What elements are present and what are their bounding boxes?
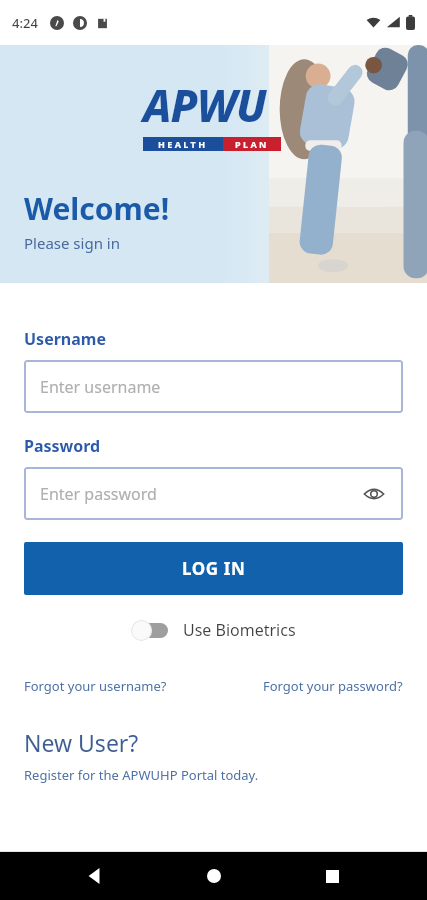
staticText: Password [24, 435, 101, 457]
button[interactable]: Forgot your password? [263, 677, 403, 695]
staticText: Use Biometrics [183, 619, 296, 641]
staticText: Welcome! [24, 188, 170, 229]
staticText: HEALTH [158, 138, 208, 150]
button[interactable]: Back [71, 852, 119, 900]
staticText: Enter username [40, 376, 161, 398]
staticText: Enter password [40, 483, 157, 505]
staticText: LOG IN [182, 557, 246, 580]
staticText: PLAN [235, 138, 269, 150]
button[interactable]: Enter password [24, 467, 403, 520]
staticText: 4:24 [12, 14, 38, 32]
button[interactable]: Enter username [24, 360, 403, 413]
button[interactable]: Forgot your username? [24, 677, 167, 695]
button[interactable]: Show password [359, 479, 389, 509]
staticText: Forgot your username? [24, 677, 167, 695]
staticText: Forgot your password? [263, 677, 403, 695]
staticText: Please sign in [24, 233, 120, 253]
staticText: New User? [24, 727, 139, 758]
button[interactable]: Use Biometrics [24, 613, 403, 647]
staticText: Username [24, 328, 106, 350]
staticText: Register for the APWUHP Portal today. [24, 766, 259, 784]
button[interactable]: Home [190, 852, 238, 900]
button[interactable]: LOG IN [24, 542, 403, 595]
button[interactable]: New User? [24, 727, 403, 784]
staticText: APWU [143, 75, 266, 135]
button[interactable]: Recent apps [308, 852, 356, 900]
